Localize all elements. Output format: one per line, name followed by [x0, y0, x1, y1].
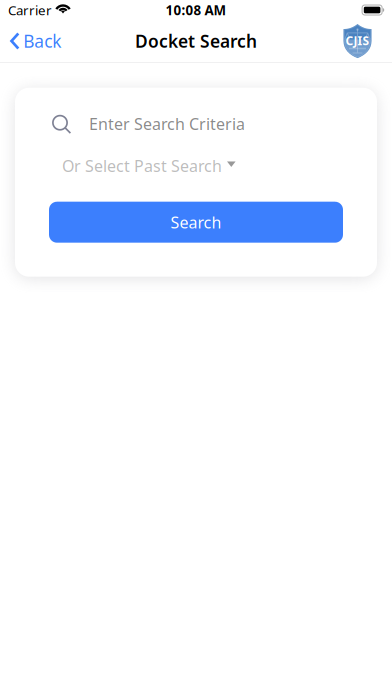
button[interactable]: Back	[0, 20, 69, 62]
staticText: Enter Search Criteria	[89, 113, 245, 134]
staticText: CJIS	[345, 32, 369, 48]
staticText: Carrier	[8, 1, 52, 19]
button[interactable]: Enter Search Criteria	[15, 112, 377, 137]
button[interactable]: Or Select Past Search	[15, 156, 377, 176]
staticText: Search	[170, 212, 221, 233]
button[interactable]: Search	[49, 202, 343, 243]
staticText: Or Select Past Search	[62, 155, 222, 176]
staticText: Docket Search	[135, 29, 257, 52]
button[interactable]: CJIS	[343, 20, 392, 62]
staticText: 10:08 AM	[165, 1, 226, 19]
staticText: Back	[23, 29, 61, 52]
